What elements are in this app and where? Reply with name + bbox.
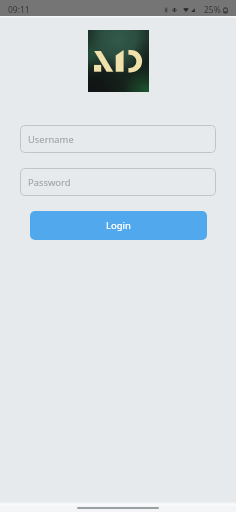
staticText: 09:11 [8, 4, 30, 16]
button[interactable]: Password [20, 168, 216, 196]
staticText: Username [28, 133, 74, 146]
staticText: Login [106, 219, 131, 232]
staticText: Password [28, 176, 71, 189]
button[interactable]: Login [30, 211, 207, 240]
button[interactable]: Username [20, 125, 216, 153]
staticText: 25% [204, 4, 221, 16]
